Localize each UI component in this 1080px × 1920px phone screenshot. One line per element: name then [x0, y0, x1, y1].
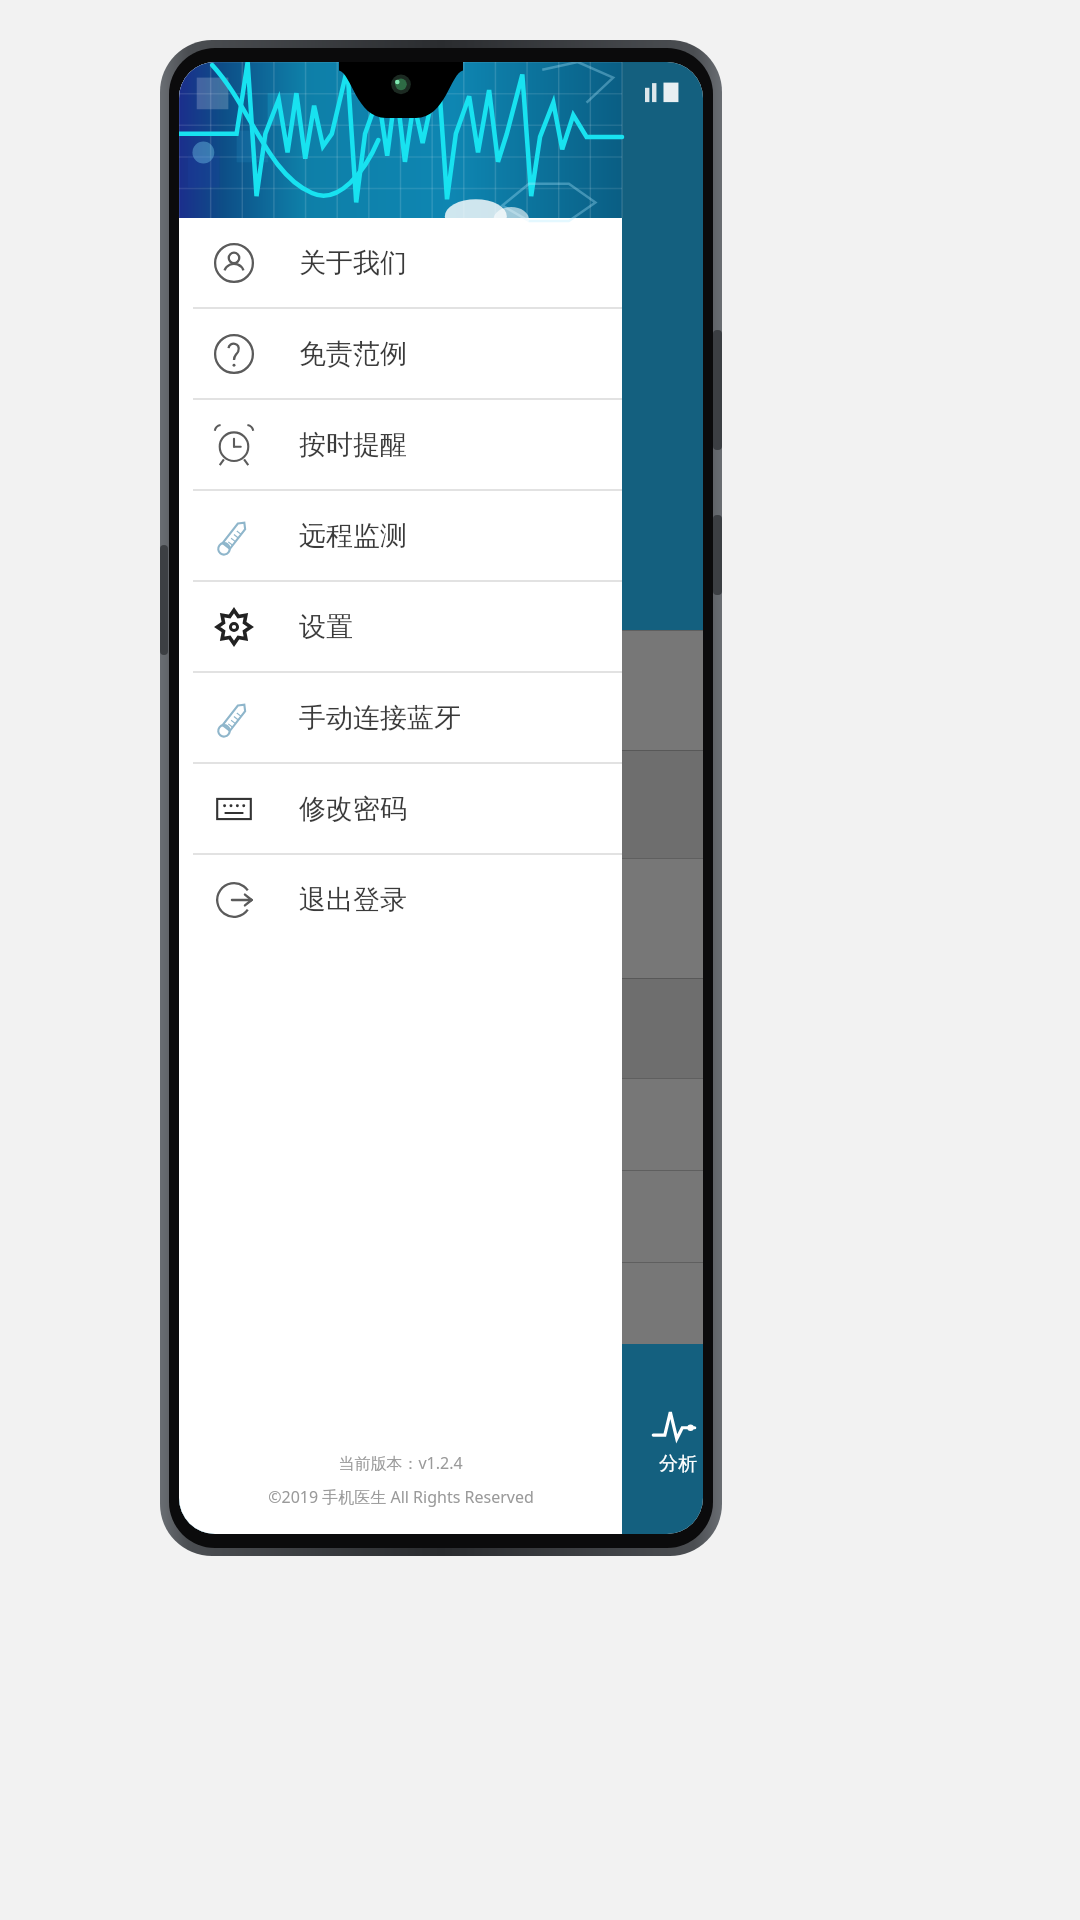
- button[interactable]: 设置: [179, 582, 622, 671]
- staticText: 修改密码: [299, 792, 407, 826]
- button[interactable]: 按时提醒: [179, 400, 622, 489]
- staticText: 当前版本：v1.2.4: [338, 1452, 463, 1474]
- staticText: 分析: [659, 1452, 697, 1476]
- staticText: 设置: [299, 610, 353, 644]
- staticText: 免责范例: [299, 337, 407, 371]
- button[interactable]: 免责范例: [179, 309, 622, 398]
- staticText: 按时提醒: [299, 428, 407, 462]
- button[interactable]: 退出登录: [179, 855, 622, 944]
- button[interactable]: 远程监测: [179, 491, 622, 580]
- staticText: 手动连接蓝牙: [299, 701, 461, 735]
- staticText: ©2019 手机医生 All Rights Reserved: [268, 1486, 534, 1508]
- staticText: 远程监测: [299, 519, 407, 553]
- staticText: 退出登录: [299, 883, 407, 917]
- button[interactable]: 修改密码: [179, 764, 622, 853]
- button[interactable]: 关于我们: [179, 218, 622, 307]
- staticText: 关于我们: [299, 246, 407, 280]
- button[interactable]: 手动连接蓝牙: [179, 673, 622, 762]
